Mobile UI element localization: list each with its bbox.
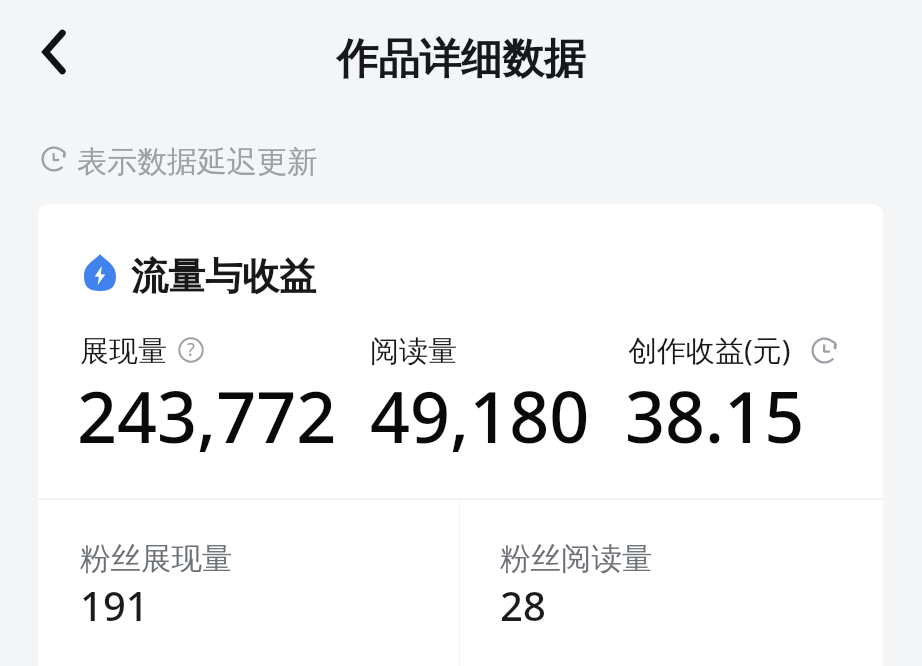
button[interactable] (58, 324, 348, 434)
staticText: 28 (500, 578, 546, 632)
button[interactable] (608, 324, 863, 434)
button[interactable] (348, 324, 608, 434)
button[interactable]: Back (22, 20, 86, 84)
staticText: 49,180 (370, 368, 590, 463)
button[interactable] (38, 500, 459, 666)
staticText: 191 (80, 578, 149, 632)
button[interactable]: Data delayed (811, 337, 838, 364)
button[interactable]: What is this (178, 337, 204, 363)
staticText: 流量与收益 (131, 253, 316, 300)
button[interactable] (460, 500, 883, 666)
staticText: 展现量 (80, 333, 167, 370)
staticText: ? (187, 337, 195, 362)
staticText: 38.15 (625, 368, 805, 463)
staticText: 阅读量 (370, 333, 457, 370)
staticText: 243,772 (77, 368, 337, 463)
staticText: 粉丝展现量 (80, 540, 233, 578)
other: Delayed data (41, 146, 67, 172)
staticText: 创作收益(元) (628, 330, 791, 370)
staticText: 作品详细数据 (0, 33, 922, 85)
staticText: 表示数据延迟更新 (77, 143, 317, 181)
staticText: 粉丝阅读量 (500, 540, 653, 578)
